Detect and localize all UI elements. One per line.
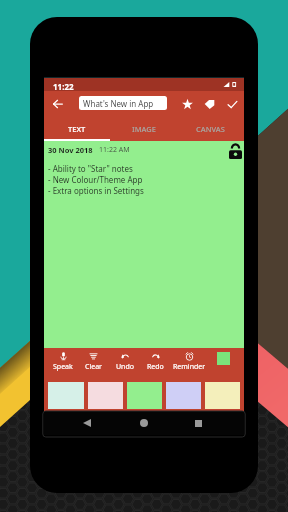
staticText: Undo (116, 362, 134, 372)
staticText: TEXT (68, 124, 86, 134)
staticText: What's New in App (83, 98, 154, 109)
button[interactable]: IMAGE (110, 117, 177, 141)
button[interactable]: Star (177, 94, 197, 114)
staticText: 30 Nov 2018 (48, 145, 93, 155)
button[interactable]: Lock (229, 144, 242, 159)
staticText: - Extra options in Settings (48, 185, 144, 196)
staticText: Speak (53, 362, 73, 372)
button[interactable]: Reminder (172, 349, 206, 381)
button[interactable]: What's New in App (79, 96, 167, 110)
staticText: - Ability to "Star" notes (48, 163, 133, 174)
button[interactable]: Home (135, 414, 153, 432)
staticText: Redo (147, 362, 164, 372)
button[interactable]: CANVAS (177, 117, 244, 141)
staticText: - New Colour/Theme App (48, 174, 143, 185)
button[interactable]: TEXT (44, 117, 110, 141)
button[interactable]: Undo (108, 349, 142, 381)
button[interactable]: Redo (138, 349, 172, 381)
staticText: 11:22 (53, 81, 74, 92)
staticText: Clear (85, 362, 102, 372)
staticText: 11:22 AM (99, 145, 130, 155)
staticText: IMAGE (132, 124, 156, 134)
staticText: CANVAS (196, 124, 225, 134)
button[interactable]: Clear (76, 349, 110, 381)
staticText: Reminder (173, 362, 206, 372)
button[interactable]: Done (222, 94, 242, 114)
button[interactable]: Speak (46, 349, 80, 381)
button[interactable]: Back (78, 414, 96, 432)
button[interactable]: Recents (189, 414, 207, 432)
button[interactable]: Back (48, 94, 68, 114)
button[interactable]: Label (199, 94, 219, 114)
